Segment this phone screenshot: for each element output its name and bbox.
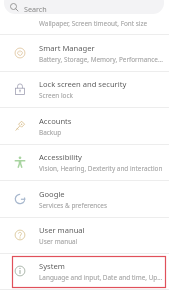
staticText: User manual bbox=[39, 225, 85, 235]
staticText: User manual bbox=[39, 237, 165, 246]
staticText: Smart Manager bbox=[39, 43, 95, 53]
staticText: Language and input, Date and time, Upd..… bbox=[39, 273, 165, 282]
staticText: Lock screen and security bbox=[39, 79, 127, 89]
button[interactable]: Accounts bbox=[0, 108, 169, 144]
staticText: Search bbox=[24, 4, 47, 14]
button[interactable]: Google bbox=[0, 181, 169, 217]
staticText: Vision, Hearing, Dexterity and interacti… bbox=[39, 164, 165, 173]
button[interactable]: Search bbox=[4, 0, 164, 14]
staticText: Accessibility bbox=[39, 152, 82, 162]
staticText: Backup bbox=[39, 128, 165, 137]
staticText: Accounts bbox=[39, 116, 72, 126]
button[interactable]: Lock screen and security bbox=[0, 71, 169, 107]
staticText: Google bbox=[39, 189, 65, 199]
other: Search bbox=[10, 3, 19, 12]
button[interactable]: Smart Manager bbox=[0, 35, 169, 71]
button[interactable]: User manual bbox=[0, 217, 169, 253]
button[interactable]: Wallpaper, Screen timeout, Font size bbox=[0, 14, 169, 35]
button[interactable]: Accessibility bbox=[0, 144, 169, 180]
staticText: System bbox=[39, 261, 65, 271]
staticText: Screen lock bbox=[39, 91, 165, 100]
staticText: Battery, Storage, Memory, Performance... bbox=[39, 55, 165, 64]
button[interactable]: System bbox=[0, 253, 169, 289]
staticText: Wallpaper, Screen timeout, Font size bbox=[39, 19, 148, 28]
staticText: Services & preferences bbox=[39, 201, 165, 210]
